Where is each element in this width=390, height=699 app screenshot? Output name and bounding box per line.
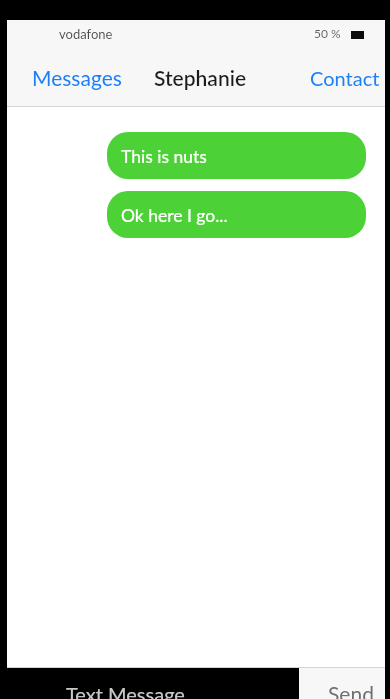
- staticText: Stephanie: [154, 65, 247, 90]
- button[interactable]: Text Message: [7, 668, 299, 699]
- staticText: This is nuts: [121, 146, 207, 167]
- button[interactable]: Ok here I go...: [107, 191, 366, 238]
- staticText: Send: [328, 681, 374, 699]
- staticText: Text Message: [66, 682, 185, 699]
- staticText: Messages: [32, 65, 122, 90]
- button[interactable]: Send: [299, 668, 385, 699]
- button[interactable]: This is nuts: [107, 132, 366, 179]
- staticText: Ok here I go...: [121, 205, 228, 226]
- staticText: 50 %: [314, 26, 341, 40]
- staticText: Contact: [310, 66, 380, 90]
- button[interactable]: Messages: [7, 47, 134, 106]
- staticText: vodafone: [59, 26, 113, 42]
- button[interactable]: Contact: [298, 47, 385, 106]
